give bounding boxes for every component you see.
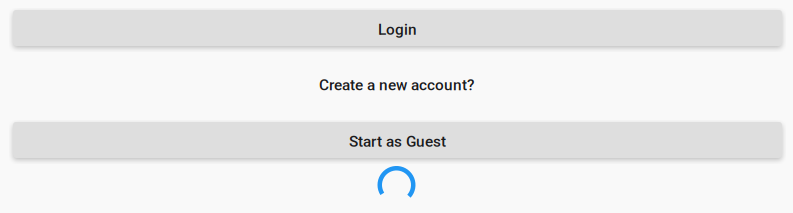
button[interactable]: Start as Guest [0, 122, 793, 158]
button[interactable]: Create a new account? [311, 73, 482, 97]
staticText: Create a new account? [319, 76, 474, 94]
button[interactable]: Login [0, 10, 793, 46]
staticText: Login [378, 20, 417, 38]
staticText: Start as Guest [349, 132, 446, 150]
